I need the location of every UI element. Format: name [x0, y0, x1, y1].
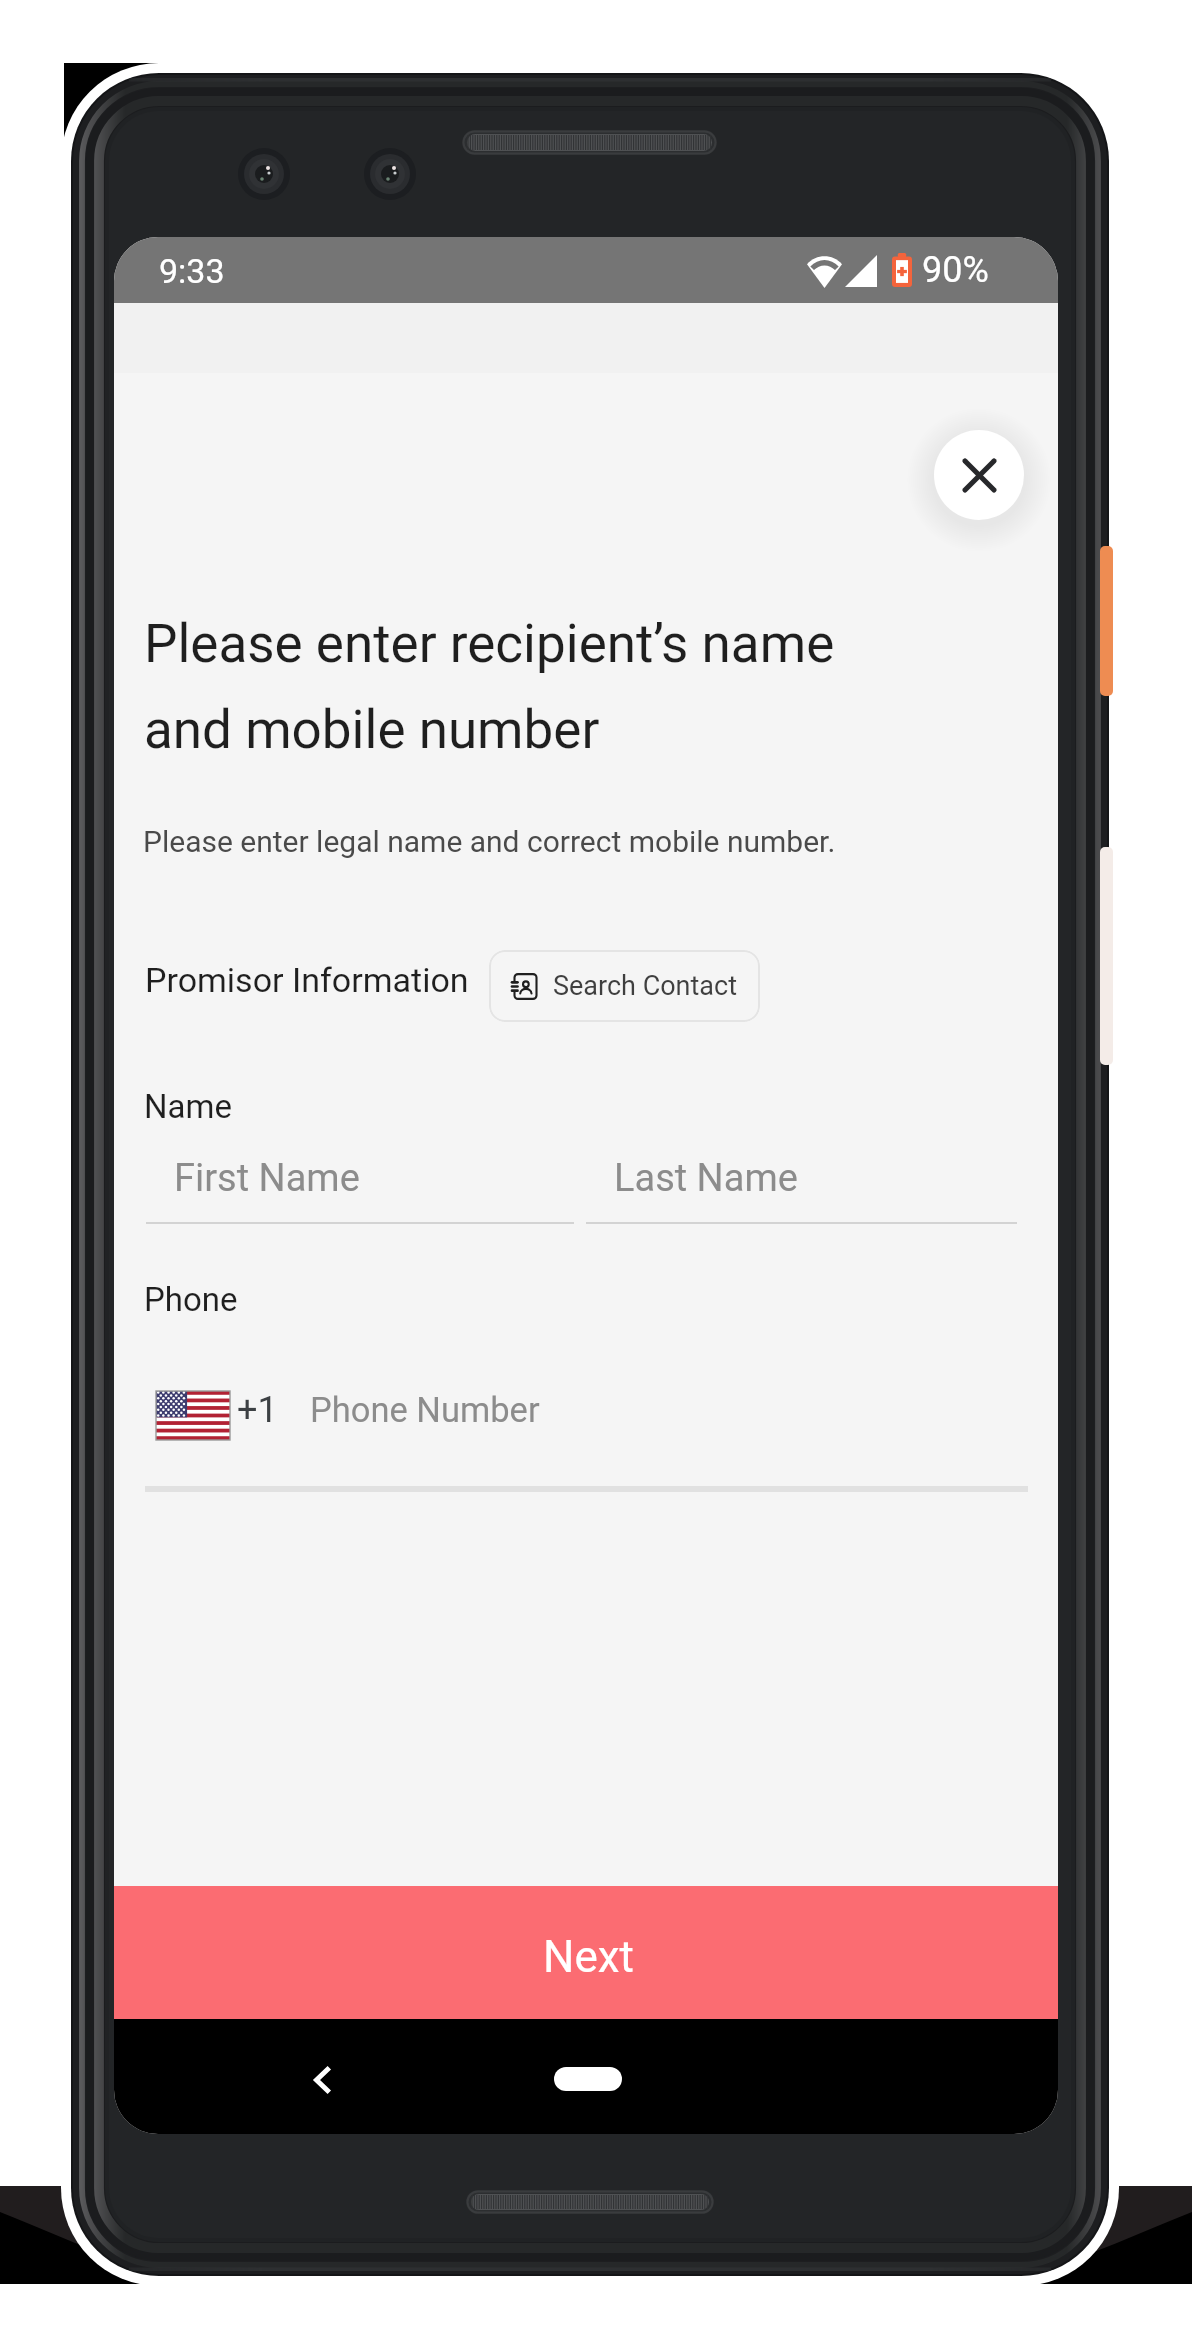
button[interactable]: +1: [145, 1380, 1028, 1489]
staticText: 9:33: [159, 251, 225, 291]
staticText: Name: [144, 1087, 232, 1126]
button[interactable]: Next: [114, 1886, 1058, 2019]
staticText: Phone: [144, 1280, 238, 1319]
button[interactable]: Search Contact: [489, 950, 760, 1022]
staticText: Next: [543, 1931, 634, 1983]
staticText: Please enter legal name and correct mobi…: [143, 824, 836, 859]
staticText: Please enter recipient’s name and mobile…: [144, 613, 904, 761]
staticText: Last Name: [614, 1156, 798, 1201]
button[interactable]: Last Name: [586, 1145, 1017, 1224]
staticText: Search Contact: [553, 970, 738, 1002]
staticText: 90%: [922, 249, 989, 291]
staticText: Phone Number: [310, 1390, 540, 1430]
staticText: Promisor Information: [145, 960, 469, 1000]
staticText: First Name: [174, 1156, 360, 1201]
staticText: +1: [237, 1389, 278, 1431]
button[interactable]: First Name: [146, 1145, 574, 1224]
button[interactable]: Home: [554, 2067, 622, 2091]
button[interactable]: Back: [290, 2048, 354, 2112]
button[interactable]: Close: [934, 430, 1024, 520]
